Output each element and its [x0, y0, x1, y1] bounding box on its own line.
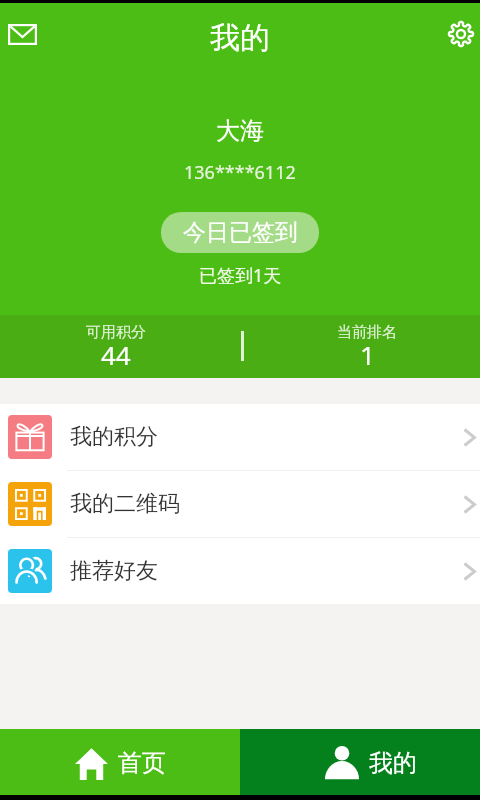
button[interactable]: 今日已签到: [161, 212, 319, 253]
button[interactable]: 我的积分: [0, 404, 480, 471]
staticText: 我的积分: [70, 423, 158, 451]
button[interactable]: 我的二维码: [0, 471, 480, 538]
staticText: 我的二维码: [70, 490, 180, 518]
staticText: 可用积分: [86, 323, 146, 342]
button[interactable]: Settings: [438, 11, 480, 57]
staticText: 已签到1天: [199, 263, 282, 288]
staticText: 我的: [210, 19, 270, 57]
staticText: 大海: [216, 116, 264, 146]
button[interactable]: 可用积分: [0, 315, 236, 378]
staticText: 首页: [118, 748, 166, 778]
button[interactable]: Messages: [0, 11, 45, 57]
button[interactable]: 首页: [0, 729, 240, 795]
staticText: 44: [101, 337, 131, 372]
button[interactable]: 我的: [240, 729, 480, 795]
staticText: 今日已签到: [183, 218, 298, 247]
button[interactable]: 当前排名: [247, 315, 480, 378]
staticText: 推荐好友: [70, 557, 158, 585]
staticText: 我的: [369, 748, 417, 778]
button[interactable]: 推荐好友: [0, 538, 480, 604]
staticText: 1: [360, 337, 375, 372]
staticText: 136****6112: [184, 160, 296, 185]
staticText: 当前排名: [337, 323, 397, 342]
